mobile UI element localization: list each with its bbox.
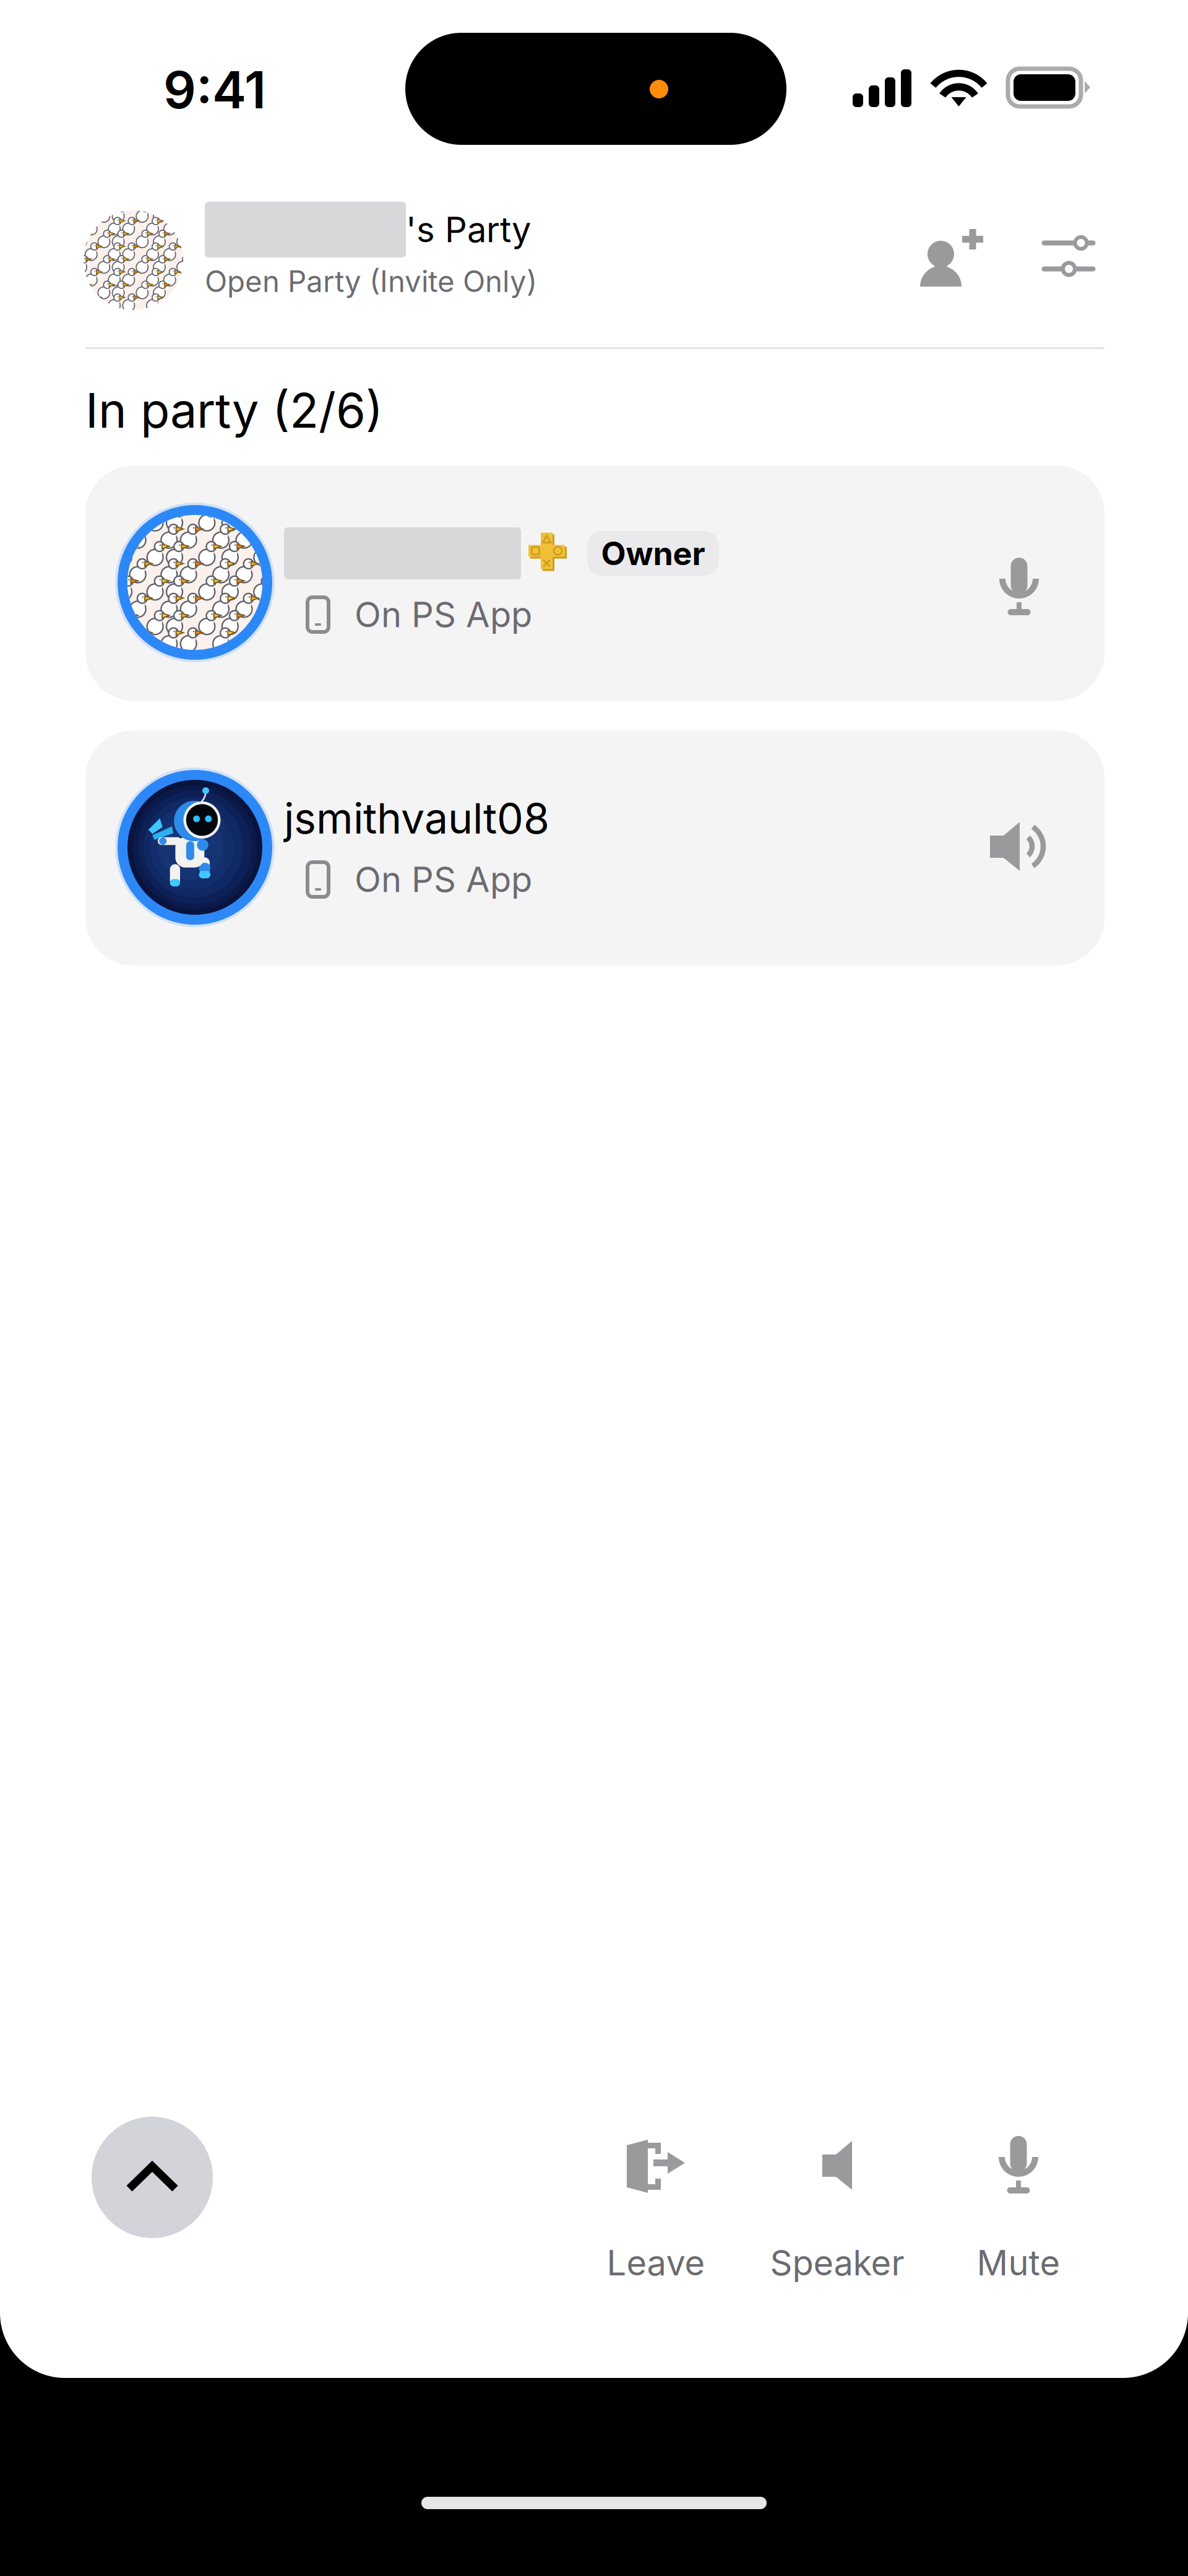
button[interactable]: Owner [85, 465, 1104, 701]
staticText: On PS App [355, 594, 532, 636]
staticText: Speaker [770, 2242, 904, 2284]
staticText: jsmithvault08 [284, 793, 549, 844]
button[interactable]: Mute [932, 2129, 1105, 2290]
staticText: Leave [607, 2242, 705, 2284]
button[interactable]: Speaker [751, 2129, 924, 2290]
staticText: 's Party [406, 209, 531, 251]
button[interactable]: Party settings [1042, 240, 1095, 274]
button[interactable]: Leave [569, 2129, 742, 2290]
staticText: On PS App [355, 859, 532, 900]
staticText: Owner [601, 534, 705, 573]
staticText: In party (2/6) [85, 381, 383, 439]
button[interactable]: jsmithvault08 [85, 730, 1104, 966]
staticText: Mute [977, 2242, 1060, 2284]
button[interactable]: 's Party [84, 204, 826, 316]
staticText: 9:41 [163, 59, 266, 121]
button[interactable]: Expand [92, 2117, 213, 2238]
staticText: Open Party (Invite Only) [205, 264, 537, 299]
button[interactable]: Invite to party [920, 229, 983, 287]
